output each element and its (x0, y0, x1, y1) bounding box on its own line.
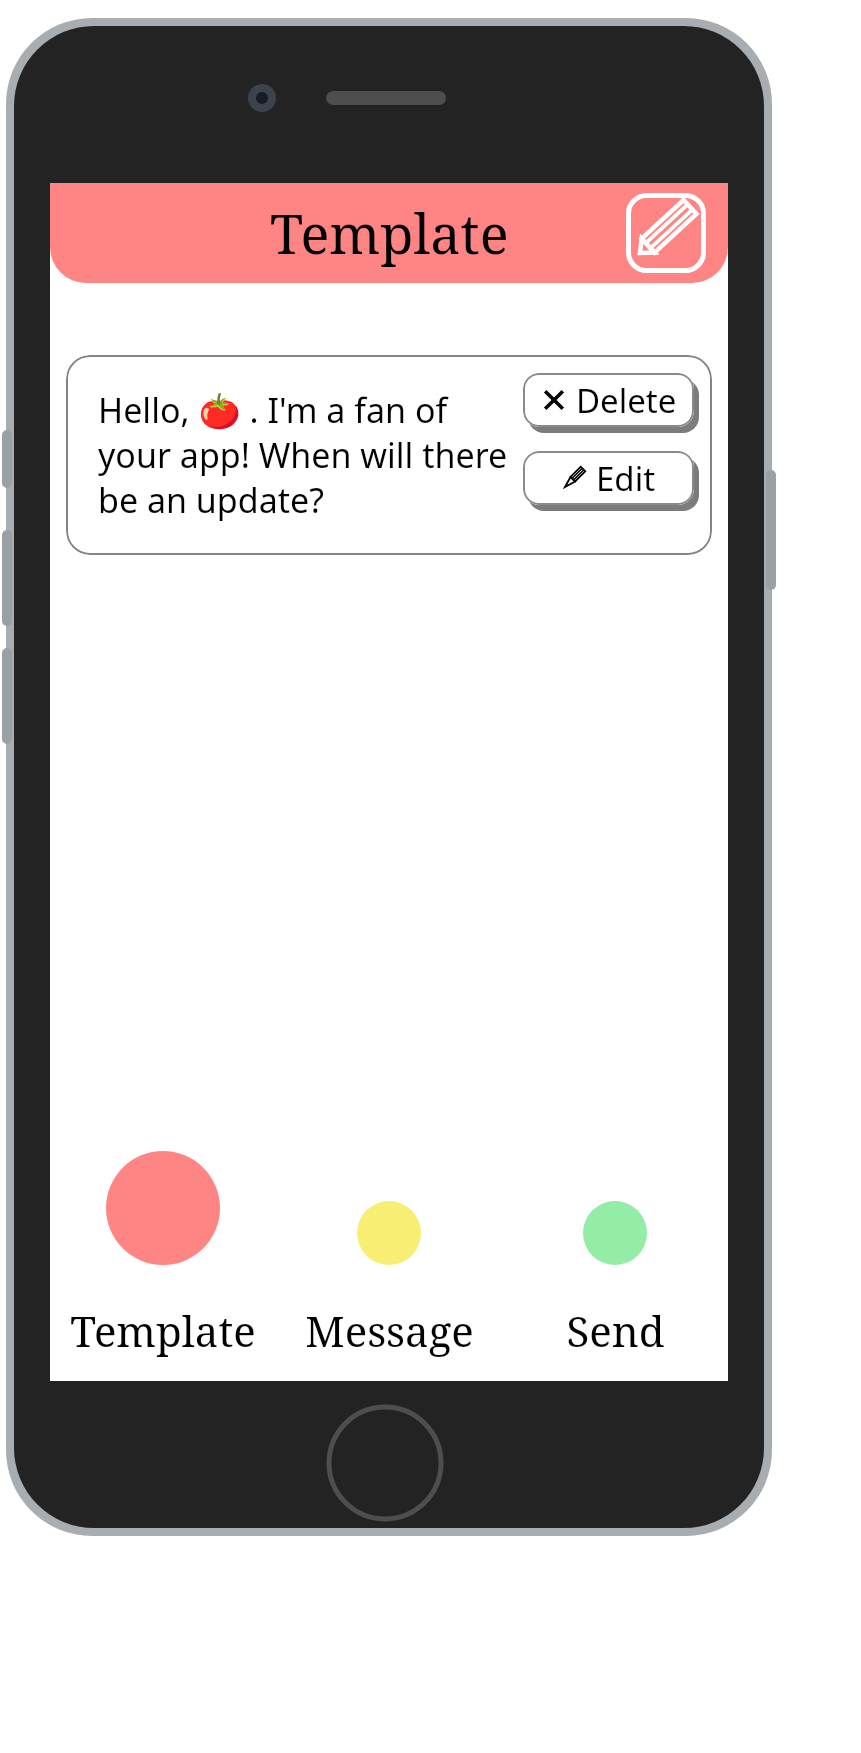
button[interactable]: Delete (523, 373, 694, 427)
button[interactable]: Hello, 🍅 . I'm a fan of your app! When w… (66, 355, 712, 555)
staticText: Edit (596, 456, 656, 501)
staticText: Message (305, 1302, 474, 1359)
button[interactable]: Edit (523, 451, 694, 505)
staticText: Delete (576, 378, 677, 423)
staticText: Send (566, 1302, 665, 1359)
button[interactable]: Template (50, 1143, 276, 1381)
button[interactable]: Message (276, 1143, 502, 1381)
button[interactable]: Create template (626, 193, 706, 273)
staticText: Template (270, 196, 509, 270)
button[interactable]: Send (502, 1143, 728, 1381)
staticText: Template (70, 1302, 256, 1359)
staticText: Hello, 🍅 . I'm a fan of your app! When w… (98, 387, 514, 523)
